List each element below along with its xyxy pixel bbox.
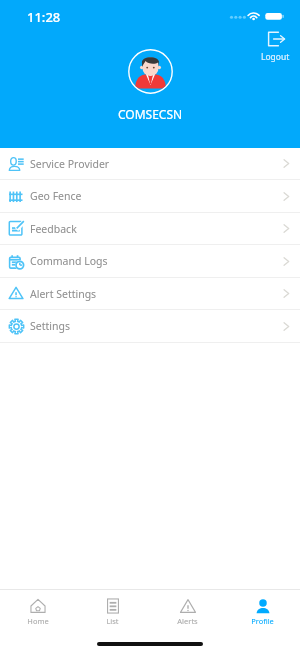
button[interactable]: Logout xyxy=(261,31,290,63)
staticText: Profile xyxy=(251,616,274,626)
button[interactable]: Geo Fence xyxy=(0,180,300,212)
button[interactable]: List xyxy=(75,590,150,634)
button[interactable]: Feedback xyxy=(0,213,300,244)
button[interactable]: Command Logs xyxy=(0,245,300,277)
staticText: Feedback xyxy=(30,222,77,236)
staticText: Alert Settings xyxy=(30,287,97,301)
staticText: Logout xyxy=(261,51,290,63)
staticText: Service Provider xyxy=(30,157,110,171)
staticText: Home xyxy=(27,616,49,626)
button[interactable]: Profile xyxy=(225,590,300,634)
button[interactable]: Settings xyxy=(0,310,300,342)
button[interactable]: Alerts xyxy=(150,590,225,634)
staticText: Alerts xyxy=(177,616,198,626)
staticText: Command Logs xyxy=(30,254,108,268)
button[interactable]: Alert Settings xyxy=(0,278,300,309)
staticText: COMSECSN xyxy=(118,106,183,122)
staticText: List xyxy=(106,616,119,626)
staticText: Settings xyxy=(30,319,70,333)
staticText: Geo Fence xyxy=(30,189,82,203)
button[interactable]: Service Provider xyxy=(0,148,300,179)
staticText: 11:28 xyxy=(27,8,61,26)
button[interactable]: Home xyxy=(0,590,75,634)
